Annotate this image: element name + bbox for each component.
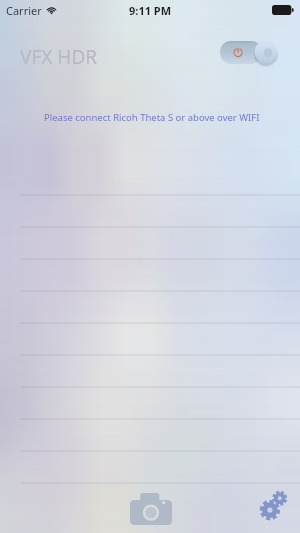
staticText: VFX HDR	[20, 44, 98, 70]
staticText: 9:11 PM	[129, 3, 172, 18]
button[interactable]: Settings	[255, 485, 295, 525]
button[interactable]: Take picture	[124, 487, 178, 531]
staticText: Carrier	[6, 3, 42, 18]
button[interactable]: Power toggle	[218, 36, 278, 68]
staticText: Please connect Ricoh Theta S or above ov…	[44, 111, 260, 124]
